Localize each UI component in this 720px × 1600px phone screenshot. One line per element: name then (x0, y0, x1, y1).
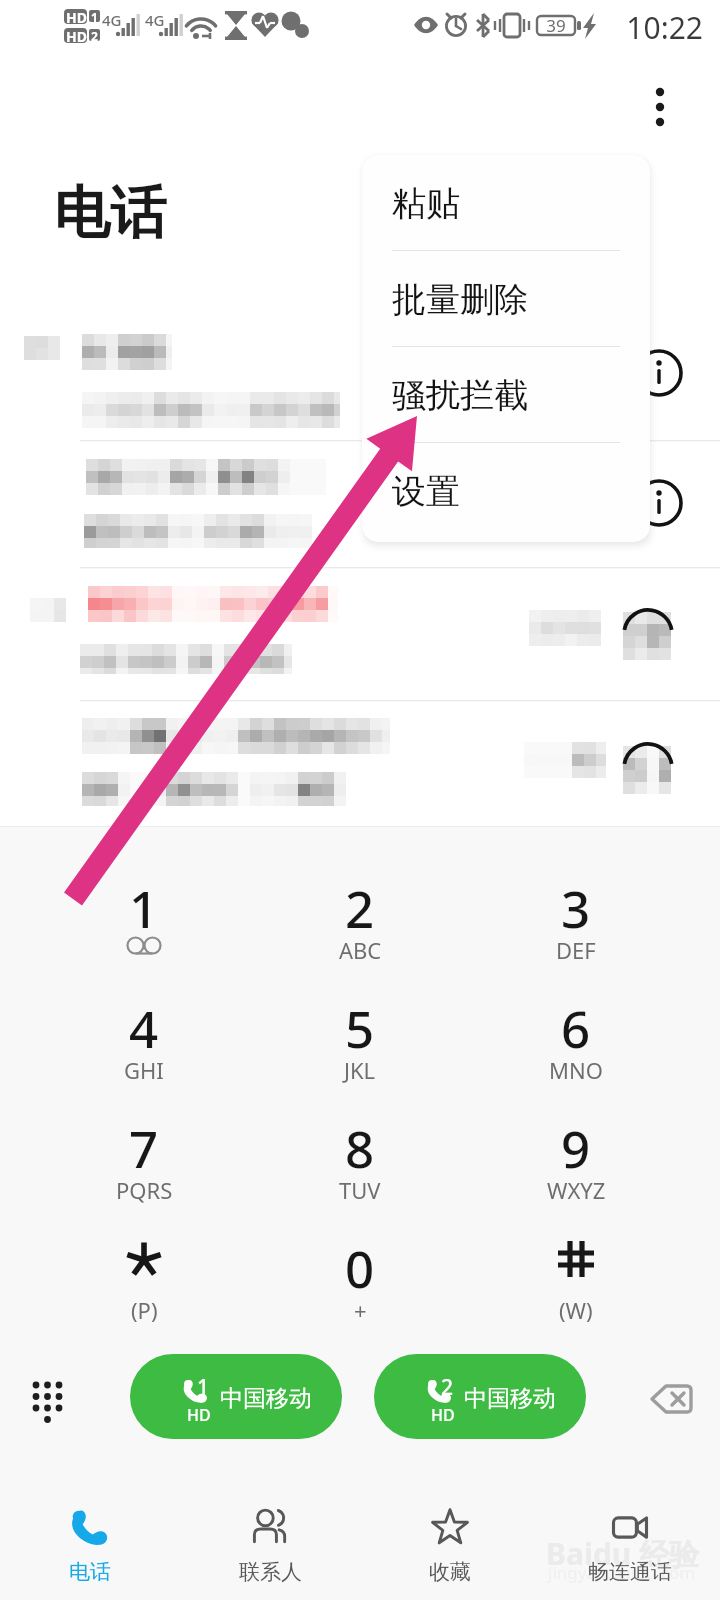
staticText: 中国移动 (464, 1384, 556, 1413)
staticText: DEF (556, 935, 596, 965)
staticText: 2 (91, 28, 98, 44)
button[interactable]: (P) (36, 1211, 252, 1331)
staticText: WXYZ (547, 1175, 606, 1205)
staticText: 1 (129, 873, 159, 942)
staticText: HD (431, 1404, 455, 1426)
button[interactable]: 8 (252, 1091, 468, 1211)
button[interactable]: 5 (252, 971, 468, 1091)
staticText: 骚扰拦截 (392, 374, 528, 417)
staticText: 1 (91, 9, 98, 25)
button[interactable]: 联系人 (180, 1495, 360, 1600)
button[interactable] (0, 700, 720, 826)
button[interactable]: 1 (130, 1354, 342, 1439)
staticText: 收藏 (429, 1559, 471, 1585)
staticText: 6 (561, 993, 591, 1062)
staticText: 0 (345, 1233, 375, 1302)
button[interactable] (0, 567, 720, 700)
staticText: jingyan.baidu.com (548, 1561, 696, 1584)
staticText: 4G (145, 10, 165, 30)
staticText: PQRS (116, 1175, 173, 1205)
button[interactable]: 收藏 (360, 1495, 540, 1600)
button[interactable]: More options (632, 79, 688, 135)
button[interactable]: 6 (468, 971, 684, 1091)
staticText: 畅连通话 (588, 1559, 672, 1585)
button[interactable]: 畅连通话 (540, 1495, 720, 1600)
staticText: ABC (339, 935, 382, 965)
staticText: 9 (561, 1113, 591, 1182)
staticText: 2 (441, 1373, 454, 1402)
staticText: HD (187, 1404, 211, 1426)
staticText: GHI (124, 1055, 164, 1085)
staticText: (W) (559, 1295, 593, 1325)
staticText: 2 (345, 873, 375, 942)
button[interactable]: Backspace (642, 1369, 702, 1429)
staticText: 电话 (54, 178, 166, 249)
staticText: + (354, 1295, 367, 1325)
button[interactable]: 3 (468, 851, 684, 971)
button[interactable]: Dialpad (20, 1368, 78, 1426)
staticText: 中国移动 (220, 1384, 312, 1413)
staticText: HD (66, 8, 87, 27)
staticText: 联系人 (239, 1559, 302, 1585)
staticText: 39 (539, 14, 573, 37)
staticText: Baidu 经验 (546, 1533, 700, 1574)
staticText: 电话 (69, 1559, 111, 1585)
button[interactable]: 批量删除 (362, 251, 650, 347)
button[interactable]: 骚扰拦截 (362, 347, 650, 443)
button[interactable]: 4 (36, 971, 252, 1091)
button[interactable]: 2 (374, 1354, 586, 1439)
button[interactable] (0, 312, 720, 440)
staticText: 7 (129, 1113, 159, 1182)
button[interactable] (0, 440, 720, 567)
staticText: TUV (339, 1175, 381, 1205)
button[interactable]: 1 (36, 851, 252, 971)
staticText: 5 (345, 993, 375, 1062)
staticText: MNO (549, 1055, 603, 1085)
button[interactable]: 粘贴 (362, 155, 650, 251)
button[interactable]: (W) (468, 1211, 684, 1331)
staticText: HD (66, 27, 87, 46)
button[interactable]: 7 (36, 1091, 252, 1211)
staticText: 批量删除 (392, 278, 528, 321)
button[interactable]: 2 (252, 851, 468, 971)
button[interactable]: 电话 (0, 1495, 180, 1600)
button[interactable]: 0 (252, 1211, 468, 1331)
staticText: 粘贴 (392, 182, 460, 225)
button[interactable]: 设置 (362, 443, 650, 539)
button[interactable]: 9 (468, 1091, 684, 1211)
staticText: 4 (129, 993, 159, 1062)
staticText: JKL (344, 1055, 376, 1085)
staticText: (P) (131, 1295, 158, 1325)
staticText: 8 (345, 1113, 375, 1182)
staticText: 3 (561, 873, 591, 942)
staticText: 1 (197, 1373, 210, 1402)
staticText: 4G (102, 10, 122, 30)
staticText: 设置 (392, 470, 460, 513)
staticText: 10:22 (470, 7, 703, 48)
